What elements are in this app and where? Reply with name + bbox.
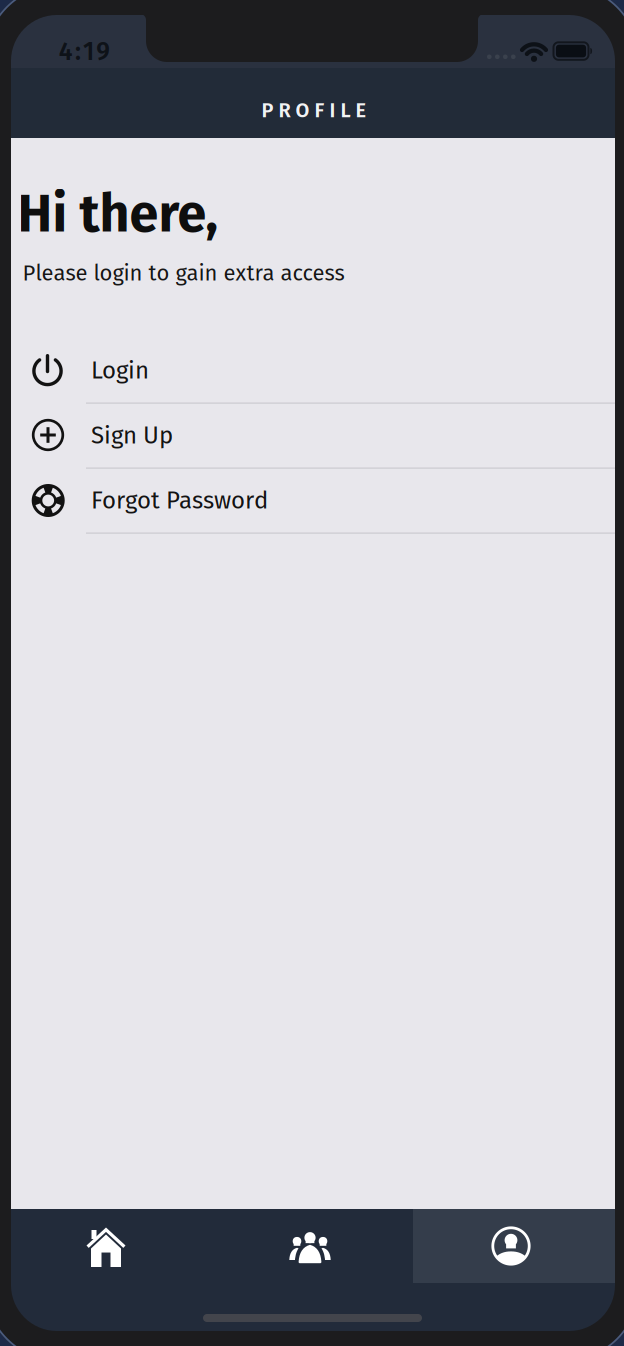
staticText: I — [329, 98, 335, 122]
staticText: F — [314, 98, 324, 122]
button[interactable]: Sign Up — [11, 403, 615, 468]
staticText: Please login to gain extra access — [22, 260, 344, 286]
staticText: R — [278, 98, 290, 122]
staticText: E — [355, 98, 366, 122]
button[interactable]: Community — [209, 1209, 410, 1283]
button[interactable]: Profile — [410, 1209, 611, 1283]
staticText: 4 — [59, 37, 73, 67]
staticText: P — [261, 98, 273, 122]
staticText: : — [75, 37, 81, 67]
button[interactable]: Home — [8, 1209, 209, 1283]
staticText: Hi there, — [17, 183, 217, 245]
staticText: 1 — [83, 37, 94, 67]
staticText: 9 — [96, 37, 110, 67]
staticText: Sign Up — [91, 421, 173, 450]
button[interactable]: Login — [11, 338, 615, 403]
button[interactable]: Forgot Password — [11, 468, 615, 533]
staticText: O — [295, 98, 309, 122]
staticText: Forgot Password — [91, 486, 268, 515]
staticText: L — [340, 98, 350, 122]
staticText: Login — [91, 356, 149, 385]
